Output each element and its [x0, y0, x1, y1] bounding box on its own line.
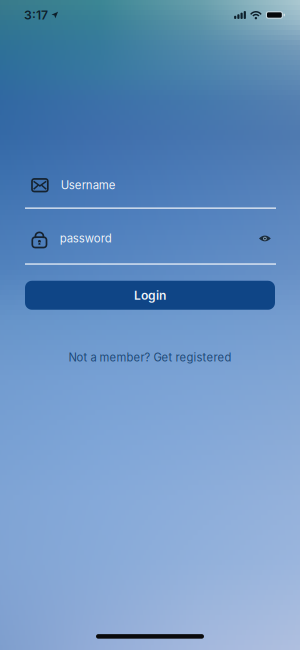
- button[interactable]: Not a member? Get registered: [68, 351, 231, 364]
- staticText: password: [60, 232, 112, 245]
- button[interactable]: Login: [25, 281, 275, 310]
- staticText: Not a member? Get registered: [68, 351, 231, 364]
- staticText: Username: [61, 178, 116, 192]
- button[interactable]: Show password: [255, 231, 275, 246]
- button[interactable]: Username: [0, 178, 300, 209]
- button[interactable]: Password: [0, 229, 300, 265]
- staticText: Login: [134, 288, 166, 302]
- staticText: 3:17: [24, 8, 48, 22]
